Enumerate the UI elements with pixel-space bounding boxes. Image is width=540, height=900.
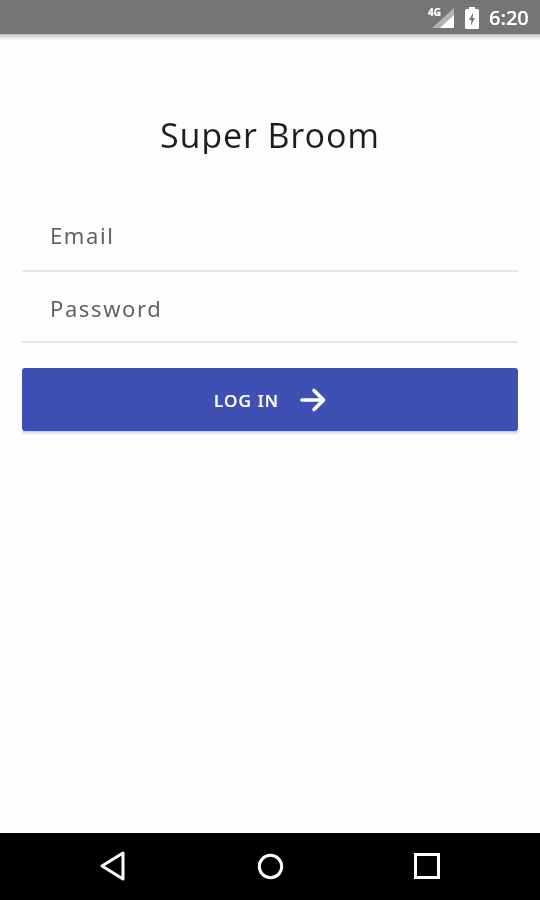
- staticText: Password: [50, 293, 163, 323]
- staticText: Super Broom: [160, 112, 380, 154]
- button[interactable]: Email: [22, 210, 518, 272]
- staticText: 4G: [428, 5, 441, 19]
- staticText: 6:20: [489, 4, 529, 31]
- staticText: LOG IN: [214, 389, 280, 412]
- button[interactable]: [255, 852, 285, 882]
- staticText: Email: [50, 220, 115, 250]
- button[interactable]: LOG IN: [22, 368, 518, 431]
- button[interactable]: [412, 851, 442, 881]
- button[interactable]: [97, 851, 127, 881]
- button[interactable]: Password: [22, 281, 518, 343]
